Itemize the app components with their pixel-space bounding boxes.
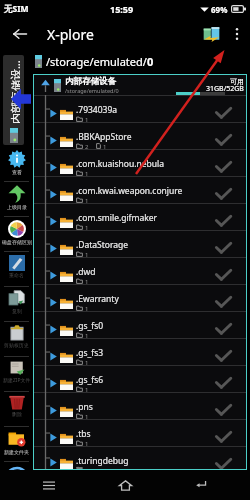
- staticText: 1: [85, 386, 89, 392]
- staticText: 1: [85, 305, 89, 311]
- button[interactable]: .gs_fs6: [34, 365, 246, 392]
- staticText: .Ewarranty: [76, 293, 119, 305]
- button[interactable]: 复制: [0, 287, 33, 322]
- staticText: .dwd: [76, 266, 96, 278]
- staticText: 可用: [230, 77, 244, 86]
- button[interactable]: 新建ZIP文件: [0, 357, 33, 392]
- staticText: 1: [85, 440, 89, 446]
- staticText: .tbs: [76, 428, 91, 440]
- button[interactable]: 查看: [0, 147, 33, 182]
- staticText: 15:59: [110, 3, 134, 15]
- staticText: .com.smile.gifmaker: [76, 212, 158, 224]
- staticText: 0: [147, 54, 154, 69]
- staticText: 新建ZIP文件: [3, 377, 31, 384]
- button[interactable]: Menu: [27, 470, 71, 500]
- staticText: .gs_fs0: [76, 320, 104, 332]
- button[interactable]: 重命名: [0, 252, 33, 287]
- staticText: .gs_fs6: [76, 374, 104, 386]
- button[interactable]: 内部存储设…: [3, 55, 24, 145]
- button[interactable]: .com.smile.gifmaker: [34, 203, 246, 230]
- button[interactable]: Dual pane mode: [198, 21, 224, 47]
- staticText: 上级目录: [7, 204, 27, 210]
- button[interactable]: 新建文件夹: [0, 427, 33, 462]
- button[interactable]: .com.kwai.weapon.conjure: [34, 176, 246, 203]
- staticText: 1: [85, 224, 89, 230]
- staticText: .com.kwai.weapon.conjure: [76, 185, 183, 197]
- staticText: 1: [103, 143, 107, 149]
- staticText: 1: [85, 197, 89, 203]
- staticText: X-plore: [47, 25, 94, 44]
- staticText: .com.kuaishou.nebula: [76, 158, 164, 170]
- staticText: .pns: [76, 401, 93, 413]
- staticText: 磁盘存储区别: [2, 239, 32, 245]
- staticText: 1: [85, 413, 89, 419]
- staticText: /storage/emulated/: [46, 54, 147, 69]
- button[interactable]: 剪贴板历史: [0, 322, 33, 357]
- staticText: .gs_fs3: [76, 347, 104, 359]
- button[interactable]: 内部存储设备: [34, 75, 246, 95]
- button[interactable]: 上级目录: [0, 182, 33, 217]
- staticText: 删除: [12, 411, 22, 417]
- staticText: 31GB/52GB: [206, 84, 244, 94]
- button[interactable]: .gs_fs3: [34, 338, 246, 365]
- button[interactable]: .pns: [34, 392, 246, 419]
- staticText: .7934039a: [76, 104, 118, 116]
- button[interactable]: Home: [103, 470, 147, 500]
- staticText: 无SIM: [4, 3, 29, 15]
- button[interactable]: .DataStorage: [34, 230, 246, 257]
- staticText: 1: [85, 251, 89, 257]
- staticText: 1: [85, 116, 89, 122]
- button[interactable]: .7934039a: [34, 95, 246, 122]
- button[interactable]: .com.kuaishou.nebula: [34, 149, 246, 176]
- button[interactable]: Back: [179, 470, 223, 500]
- button[interactable]: .BBKAppStore: [34, 122, 246, 149]
- button[interactable]: More options: [227, 24, 247, 44]
- button[interactable]: .turingdebug: [34, 446, 246, 469]
- button[interactable]: 删除: [0, 392, 33, 427]
- staticText: 69%: [211, 4, 228, 15]
- button[interactable]: Back: [7, 21, 33, 47]
- button[interactable]: .tbs: [34, 419, 246, 446]
- staticText: .DataStorage: [76, 239, 129, 251]
- staticText: 重命名: [9, 272, 24, 278]
- staticText: 复制: [12, 308, 22, 314]
- staticText: .BBKAppStore: [76, 131, 132, 143]
- staticText: 1: [85, 278, 89, 284]
- staticText: 2: [85, 143, 89, 149]
- staticText: 内部存储设…: [8, 60, 20, 124]
- staticText: 新建文件夹: [4, 449, 29, 455]
- staticText: 1: [85, 332, 89, 338]
- button[interactable]: .gs_fs0: [34, 311, 246, 338]
- button[interactable]: .Ewarranty: [34, 284, 246, 311]
- button[interactable]: 磁盘存储区别: [0, 217, 33, 252]
- button[interactable]: .dwd: [34, 257, 246, 284]
- staticText: 查看: [12, 169, 22, 175]
- staticText: 1: [85, 170, 89, 176]
- staticText: 内部存储设备: [65, 76, 116, 87]
- staticText: .turingdebug: [76, 455, 129, 467]
- staticText: 1: [85, 359, 89, 365]
- staticText: /storage/emulated/0: [65, 87, 119, 94]
- staticText: 剪贴板历史: [4, 342, 29, 348]
